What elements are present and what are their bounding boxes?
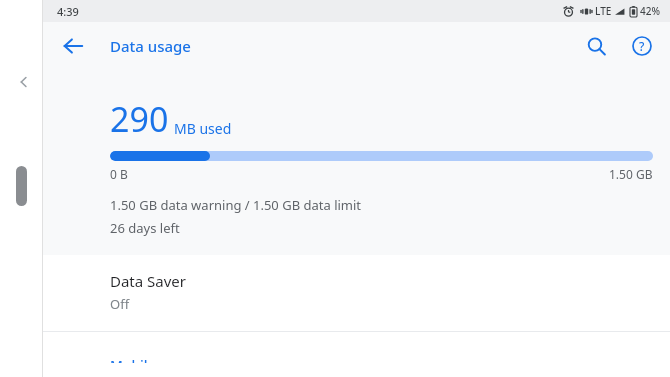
staticText: Mobile [110,356,156,363]
staticText: 290 [110,96,169,142]
staticText: Off [110,295,130,313]
staticText: Data Saver [110,271,187,291]
staticText: Data usage [110,36,191,56]
staticText: 42% [640,4,660,18]
staticText: 1.50 GB data warning / 1.50 GB data limi… [110,196,362,214]
other: Back [16,74,32,90]
button[interactable]: Help [622,26,662,66]
button[interactable]: Mobile [43,332,670,377]
staticText: 26 days left [110,219,180,237]
staticText: 1.50 GB [609,166,653,182]
staticText: ? [639,38,645,54]
button[interactable]: Navigate up [53,26,93,66]
staticText: LTE [595,4,612,18]
staticText: 4:39 [57,4,79,19]
button[interactable]: Data Saver [43,255,670,331]
staticText: 0 B [110,166,128,182]
staticText: MB used [174,119,232,138]
button[interactable]: Search [576,26,616,66]
